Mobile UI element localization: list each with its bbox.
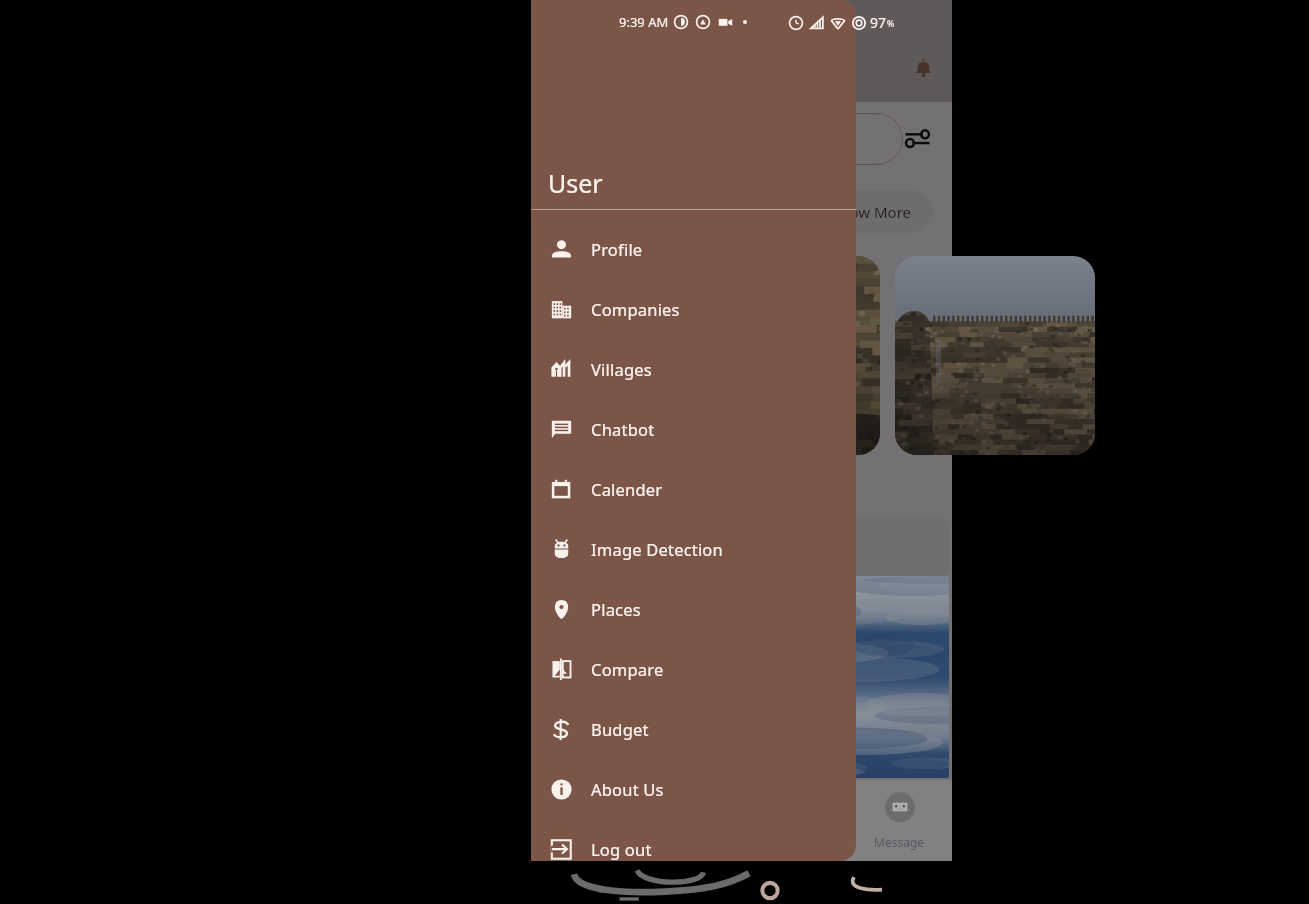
staticText: Profile xyxy=(591,238,643,260)
button[interactable]: Budget xyxy=(531,699,856,759)
button[interactable]: Message xyxy=(847,780,952,861)
staticText: Log out xyxy=(591,838,652,860)
button[interactable] xyxy=(895,256,1095,455)
button[interactable]: Chatbot xyxy=(531,399,856,459)
button[interactable]: Notifications xyxy=(912,57,935,80)
staticText: Image Detection xyxy=(591,538,723,560)
button[interactable]: Compare xyxy=(531,639,856,699)
button[interactable] xyxy=(551,113,903,165)
button[interactable]: Profile xyxy=(531,219,856,279)
button[interactable]: Log out xyxy=(531,819,856,861)
staticText: Message xyxy=(874,834,925,850)
button[interactable]: Places xyxy=(531,579,856,639)
staticText: Villages xyxy=(591,358,652,380)
button[interactable]: Villages xyxy=(531,339,856,399)
staticText: Companies xyxy=(591,298,680,320)
staticText: Places xyxy=(591,598,641,620)
button[interactable]: Companies xyxy=(531,279,856,339)
staticText: User xyxy=(548,166,603,200)
staticText: Home xyxy=(567,834,602,850)
button[interactable]: Explore xyxy=(637,780,742,861)
button[interactable]: Filter xyxy=(905,129,930,148)
staticText: Chatbot xyxy=(591,418,655,440)
staticText: About Us xyxy=(591,778,664,800)
staticText: Compare xyxy=(591,658,664,680)
staticText: 97 xyxy=(870,13,887,32)
button[interactable]: Show More xyxy=(553,190,933,233)
button[interactable] xyxy=(551,517,949,575)
button[interactable] xyxy=(553,256,880,455)
button[interactable]: Calender xyxy=(531,459,856,519)
staticText: % xyxy=(887,17,895,29)
staticText: 9:39 AM xyxy=(619,13,669,31)
staticText: Budget xyxy=(591,718,649,740)
button[interactable]: Home xyxy=(531,780,637,861)
button[interactable]: Image Detection xyxy=(531,519,856,579)
button[interactable]: About Us xyxy=(531,759,856,819)
staticText: Show More xyxy=(832,202,912,222)
staticText: Calender xyxy=(591,478,663,500)
